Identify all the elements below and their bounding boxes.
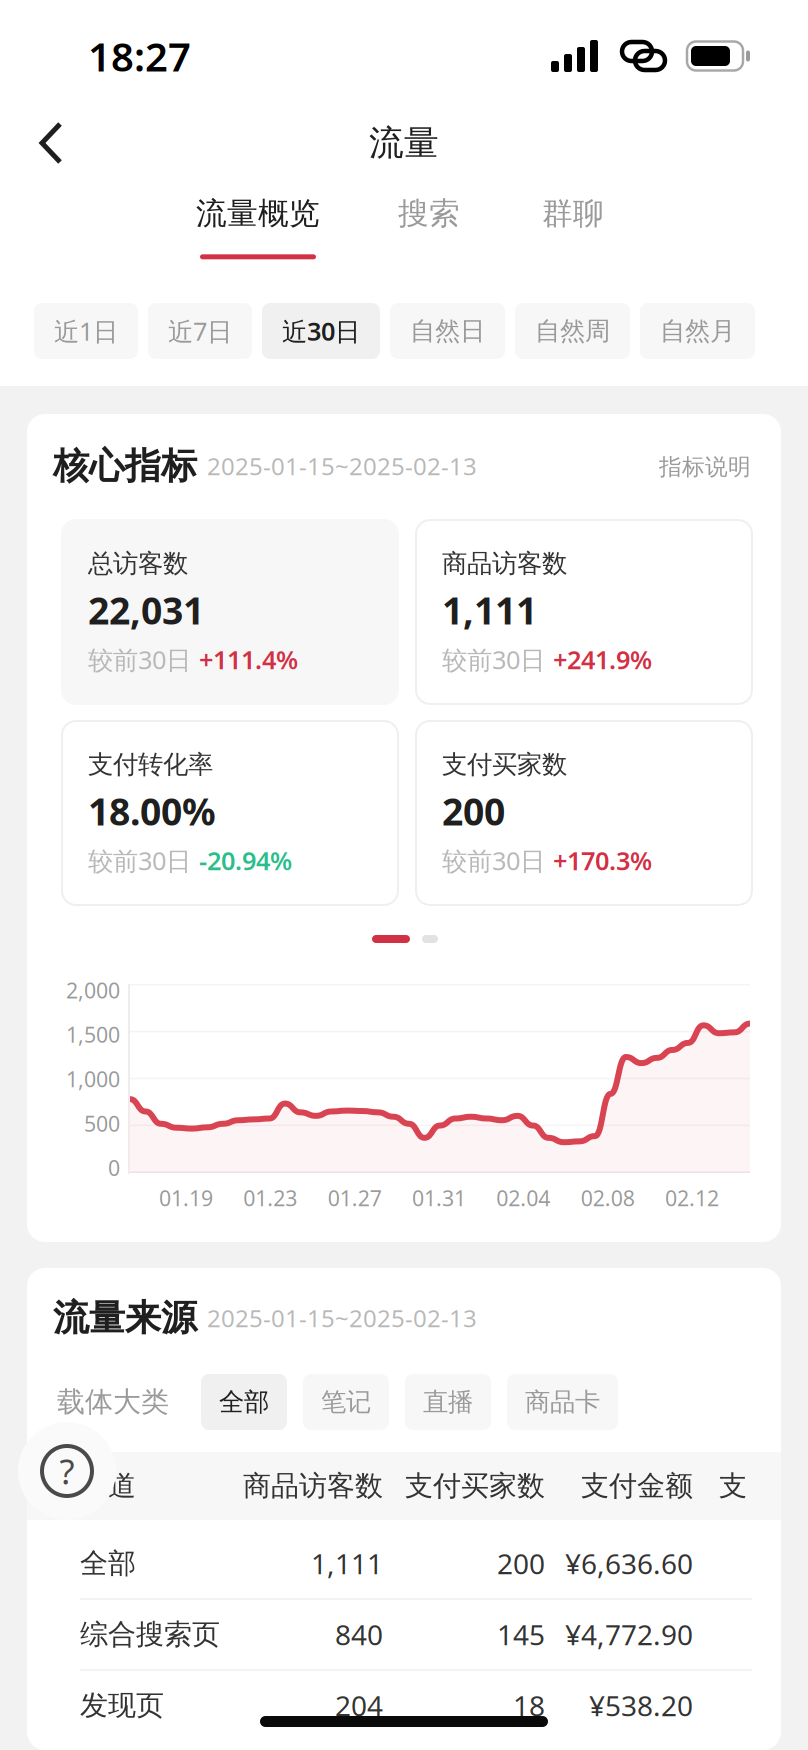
- staticText: 较前30日: [88, 643, 191, 676]
- staticText: 直播: [423, 1386, 473, 1417]
- staticText: 2,000: [66, 976, 120, 1004]
- staticText: 渠道: [80, 1469, 136, 1503]
- button[interactable]: 自然周: [515, 303, 630, 359]
- staticText: 01.31: [412, 1184, 466, 1212]
- staticText: +170.3%: [553, 844, 652, 877]
- button[interactable]: 近7日: [148, 303, 252, 359]
- staticText: 支: [719, 1469, 747, 1503]
- staticText: 流量来源: [53, 1296, 197, 1340]
- staticText: ¥538.20: [589, 1687, 693, 1724]
- staticText: 01.19: [159, 1184, 213, 1212]
- staticText: 综合搜索页: [80, 1617, 220, 1652]
- button[interactable]: 近30日: [262, 303, 380, 359]
- staticText: +241.9%: [553, 643, 652, 676]
- staticText: ¥6,636.60: [565, 1545, 693, 1582]
- button[interactable]: 综合搜索页: [27, 1600, 781, 1671]
- staticText: 18: [513, 1687, 545, 1724]
- staticText: 18:27: [88, 29, 191, 82]
- staticText: 搜索: [398, 195, 460, 232]
- button[interactable]: 直播: [405, 1374, 491, 1430]
- staticText: 指标说明: [659, 453, 751, 481]
- staticText: 载体大类: [57, 1385, 169, 1419]
- staticText: 840: [335, 1616, 383, 1653]
- staticText: 群聊: [542, 195, 604, 232]
- button[interactable]: 近1日: [34, 303, 138, 359]
- staticText: 支付买家数: [442, 749, 567, 780]
- button[interactable]: 支付买家数: [416, 721, 752, 905]
- staticText: 自然月: [660, 315, 735, 346]
- staticText: 较前30日: [442, 643, 545, 676]
- button[interactable]: 商品访客数: [416, 520, 752, 704]
- staticText: 1,111: [311, 1545, 383, 1582]
- staticText: 1,500: [66, 1020, 120, 1049]
- staticText: 2025-01-15~2025-02-13: [207, 450, 477, 482]
- staticText: 近1日: [54, 314, 118, 348]
- staticText: 01.23: [243, 1184, 297, 1212]
- staticText: 笔记: [321, 1386, 371, 1417]
- button[interactable]: 自然月: [640, 303, 755, 359]
- staticText: 较前30日: [442, 844, 545, 877]
- staticText: ¥4,772.90: [565, 1616, 693, 1653]
- button[interactable]: 支付转化率: [62, 721, 398, 905]
- staticText: 商品访客数: [243, 1469, 383, 1503]
- staticText: 商品卡: [525, 1386, 600, 1417]
- staticText: 0: [108, 1154, 120, 1182]
- staticText: 500: [84, 1109, 120, 1138]
- staticText: 商品访客数: [442, 548, 567, 579]
- button[interactable]: 全部: [27, 1529, 781, 1600]
- button[interactable]: 发现页: [27, 1671, 781, 1740]
- staticText: 02.04: [496, 1184, 550, 1212]
- staticText: -20.94%: [199, 844, 292, 877]
- button[interactable]: Back: [30, 112, 74, 174]
- staticText: 204: [335, 1687, 383, 1724]
- staticText: 01.27: [328, 1184, 382, 1212]
- staticText: 全部: [80, 1546, 136, 1581]
- staticText: 支付买家数: [405, 1469, 545, 1503]
- staticText: 自然日: [410, 315, 485, 346]
- staticText: 支付转化率: [88, 749, 213, 780]
- button[interactable]: 全部: [201, 1374, 287, 1430]
- button[interactable]: 流量概览: [182, 196, 334, 258]
- button[interactable]: 搜索: [357, 196, 501, 258]
- staticText: 流量概览: [196, 195, 320, 232]
- staticText: 核心指标: [53, 444, 197, 488]
- staticText: 全部: [219, 1386, 269, 1417]
- staticText: 18.00%: [88, 786, 216, 836]
- staticText: 近7日: [168, 314, 232, 348]
- staticText: 2025-01-15~2025-02-13: [207, 1302, 477, 1334]
- button[interactable]: Help: [18, 1422, 116, 1520]
- staticText: 1,000: [66, 1065, 120, 1093]
- staticText: +111.4%: [199, 643, 298, 676]
- staticText: 02.08: [581, 1184, 635, 1212]
- staticText: 近30日: [282, 314, 360, 348]
- staticText: 自然周: [535, 315, 610, 346]
- staticText: 总访客数: [88, 548, 188, 579]
- staticText: ?: [59, 1448, 74, 1494]
- button[interactable]: 笔记: [303, 1374, 389, 1430]
- staticText: 145: [497, 1616, 545, 1653]
- button[interactable]: 总访客数: [62, 520, 398, 704]
- staticText: 支付金额: [581, 1469, 693, 1503]
- staticText: 流量: [369, 122, 439, 164]
- button[interactable]: 商品卡: [507, 1374, 618, 1430]
- staticText: 22,031: [88, 585, 204, 635]
- staticText: 较前30日: [88, 844, 191, 877]
- staticText: 1,111: [442, 585, 537, 635]
- button[interactable]: 自然日: [390, 303, 505, 359]
- staticText: 200: [497, 1545, 545, 1582]
- button[interactable]: 群聊: [501, 196, 645, 258]
- button[interactable]: 指标说明: [659, 452, 751, 482]
- staticText: 发现页: [80, 1688, 164, 1723]
- staticText: 02.12: [665, 1184, 719, 1212]
- staticText: 200: [442, 786, 505, 836]
